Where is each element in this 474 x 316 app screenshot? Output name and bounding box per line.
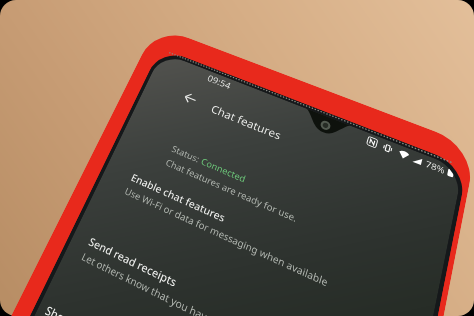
staticText: Send read receipts [39, 255, 137, 270]
staticText: Chat features are ready for use. [79, 146, 228, 160]
staticText: Chat features [102, 65, 185, 83]
staticText: Use Wi-Fi or data for messaging when ava… [51, 193, 274, 207]
staticText: Connected [114, 129, 165, 143]
staticText: Enable chat features [51, 176, 159, 191]
staticText: Status: [79, 129, 114, 143]
staticText: Let others know that you have read their… [39, 272, 275, 286]
button[interactable]: Send read receipts [39, 255, 339, 286]
button[interactable]: Enable chat features [51, 176, 351, 207]
